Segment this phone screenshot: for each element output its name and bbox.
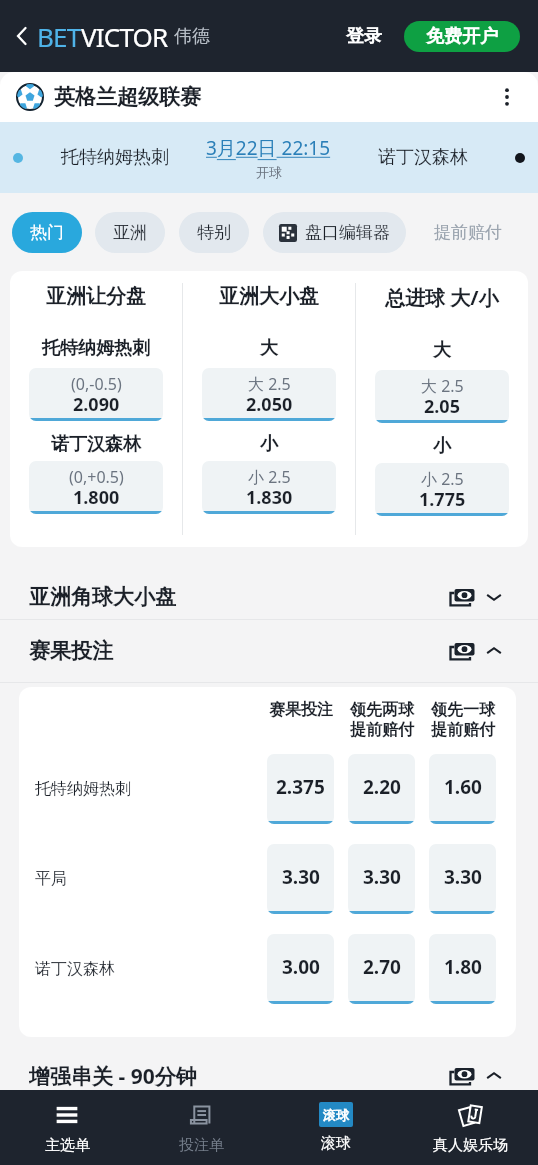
staticText: 1.830 [246,485,293,510]
button[interactable]: Main menu [0,1090,134,1165]
staticText: 小 2.5 [421,468,464,490]
staticText: 诺丁汉森林 [51,433,141,456]
staticText: 1.60 [444,774,482,800]
button[interactable]: 3.00 [267,934,334,1004]
staticText: 3.30 [282,864,320,890]
staticText: 托特纳姆热刺 [42,337,150,360]
staticText: 投注单 [179,1136,224,1155]
button[interactable]: 1.60 [429,754,496,824]
staticText: 大 2.5 [248,373,291,395]
staticText: VICTOR [81,19,168,54]
button[interactable]: 滚球 [268,1090,403,1165]
staticText: 亚洲角球大小盘 [29,584,176,610]
staticText: 热门 [30,222,64,243]
button[interactable]: 小 2.5 [375,463,509,516]
staticText: 诺丁汉森林 [35,959,115,979]
staticText: 提前赔付 [431,720,495,740]
button[interactable]: 大 2.5 [202,368,336,421]
button[interactable]: Bet slip [134,1090,268,1165]
button[interactable]: 提前赔付 [416,212,520,253]
button[interactable]: 免费开户 [404,21,520,52]
button[interactable]: 亚洲 [95,212,165,253]
staticText: 1.775 [419,487,466,512]
staticText: 免费开户 [426,25,498,48]
staticText: 伟德 [174,25,210,48]
staticText: 3月22日 22:15 [206,135,331,161]
button[interactable]: More options [492,82,522,112]
staticText: 亚洲 [113,222,147,243]
button[interactable]: 赛果投注 [0,620,538,682]
button[interactable]: 2.375 [267,754,334,824]
other: Cash out [450,1066,475,1086]
staticText: (0,-0.5) [71,373,122,395]
staticText: 2.05 [424,394,460,419]
staticText: 滚球 [323,1107,349,1123]
other: Collapse [485,1067,503,1085]
staticText: 1.80 [444,954,482,980]
other: Collapse [485,642,503,660]
staticText: 2.70 [363,954,401,980]
staticText: 增强串关 - 90分钟 [29,1062,197,1090]
other: Live casino [457,1101,485,1129]
button[interactable]: (0,+0.5) [29,461,163,514]
staticText: 大 2.5 [421,375,464,397]
button[interactable]: 特别 [179,212,249,253]
staticText: BET [37,19,81,54]
staticText: 3.30 [444,864,482,890]
staticText: 领先两球 [350,700,414,720]
staticText: 提前赔付 [350,720,414,740]
staticText: 大 [260,337,278,360]
staticText: 开球 [256,164,282,180]
button[interactable]: 增强串关 - 90分钟 [0,1062,538,1090]
staticText: 大 [433,339,451,362]
button[interactable]: 登录 [340,17,388,56]
other: Bet slip [187,1101,215,1129]
other: Cash out [450,587,475,607]
staticText: (0,+0.5) [69,466,124,488]
button[interactable]: 3.30 [429,844,496,914]
button[interactable]: 3.30 [267,844,334,914]
staticText: 2.090 [73,392,120,417]
staticText: 总进球 大/小 [385,284,499,311]
staticText: 托特纳姆热刺 [61,146,169,169]
staticText: 3.30 [363,864,401,890]
staticText: 主选单 [45,1136,90,1155]
button[interactable]: 大 2.5 [375,370,509,423]
staticText: 诺丁汉森林 [378,146,468,169]
staticText: 3.00 [282,954,320,980]
staticText: 领先一球 [431,700,495,720]
staticText: 滚球 [321,1134,351,1153]
staticText: 小 2.5 [248,466,291,488]
other: Main menu [53,1101,81,1129]
staticText: 英格兰超级联赛 [54,84,201,110]
staticText: 盘口编辑器 [305,222,390,243]
button[interactable]: Back [8,22,36,50]
button[interactable]: 盘口编辑器 [263,212,406,253]
other: Cash out [450,641,475,661]
button[interactable]: 热门 [12,212,82,253]
staticText: 平局 [35,869,67,889]
staticText: 1.800 [73,485,120,510]
staticText: 托特纳姆热刺 [35,779,131,799]
staticText: 真人娱乐场 [433,1136,508,1155]
button[interactable]: Live casino [403,1090,538,1165]
staticText: 小 [433,435,451,458]
button[interactable]: (0,-0.5) [29,368,163,421]
button[interactable]: 3.30 [348,844,415,914]
staticText: 登录 [346,25,382,48]
staticText: 2.20 [363,774,401,800]
staticText: 亚洲让分盘 [46,284,146,309]
staticText: 小 [260,433,278,456]
button[interactable]: 小 2.5 [202,461,336,514]
button[interactable]: 2.70 [348,934,415,1004]
staticText: 赛果投注 [29,638,113,664]
staticText: 特别 [197,222,231,243]
other: Expand [485,588,503,606]
staticText: 亚洲大小盘 [219,284,319,309]
staticText: 2.050 [246,392,293,417]
button[interactable]: 2.20 [348,754,415,824]
staticText: 赛果投注 [269,700,333,720]
button[interactable]: 1.80 [429,934,496,1004]
button[interactable]: 亚洲角球大小盘 [0,574,538,619]
staticText: 2.375 [276,774,325,800]
